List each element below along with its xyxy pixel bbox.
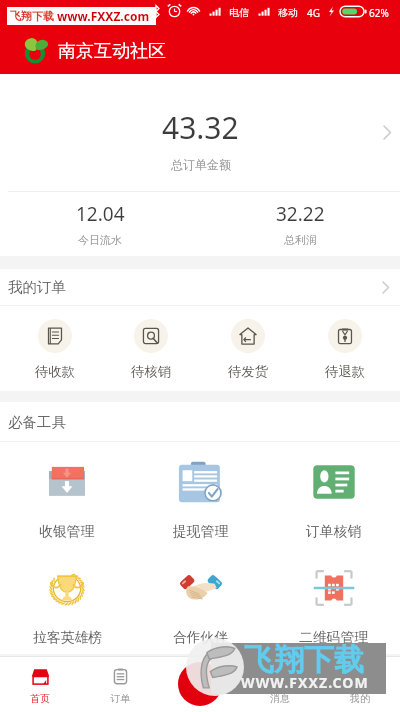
staticText: 首页 <box>30 692 50 705</box>
staticText: 提现管理 <box>173 523 229 540</box>
staticText: 合作伙伴 <box>173 629 229 646</box>
staticText: 飞翔下载 <box>244 641 364 679</box>
button[interactable]: 二维码管理 <box>267 548 400 654</box>
button[interactable]: 我的 <box>320 657 400 712</box>
staticText: 4G <box>307 6 320 20</box>
staticText: 二维码管理 <box>299 629 368 646</box>
button[interactable]: 订单核销 <box>267 442 400 548</box>
button[interactable]: 32.22 <box>200 192 400 256</box>
staticText: 32.22 <box>276 201 325 227</box>
staticText: 移动 <box>278 6 298 19</box>
button[interactable]: 收银管理 <box>0 442 134 548</box>
staticText: 待核销 <box>131 363 171 380</box>
staticText: 今日流水 <box>78 233 122 247</box>
staticText: 南京互动社区 <box>58 40 166 63</box>
button[interactable]: Scan <box>178 662 222 706</box>
staticText: 43.32 <box>162 107 239 148</box>
button[interactable]: 43.32 <box>0 74 400 191</box>
button[interactable]: 必备工具 <box>0 402 400 441</box>
staticText: 必备工具 <box>8 413 66 431</box>
staticText: 拉客英雄榜 <box>33 629 102 646</box>
staticText: 待收款 <box>35 363 75 380</box>
button[interactable]: 12.04 <box>0 192 200 256</box>
button[interactable]: 提现管理 <box>134 442 267 548</box>
staticText: 待退款 <box>325 363 365 380</box>
staticText: 收银管理 <box>39 523 95 540</box>
button[interactable]: 首页 <box>0 657 80 712</box>
button[interactable]: 待退款 <box>296 306 393 391</box>
staticText: 我的 <box>350 692 370 705</box>
staticText: 消息 <box>270 692 290 705</box>
staticText: 订单 <box>110 692 130 705</box>
button[interactable]: 合作伙伴 <box>134 548 267 654</box>
staticText: 我的订单 <box>8 278 66 296</box>
staticText: www.FXXZ.com <box>57 8 150 24</box>
staticText: 总利润 <box>284 233 317 247</box>
staticText: 62% <box>369 6 389 20</box>
staticText: 订单核销 <box>306 523 362 540</box>
staticText: 电信 <box>229 6 249 19</box>
staticText: 总订单金额 <box>171 157 231 172</box>
button[interactable]: 我的订单 <box>0 269 400 305</box>
staticText: 12.04 <box>76 201 125 227</box>
button[interactable]: 待发货 <box>199 306 296 391</box>
button[interactable]: 待收款 <box>7 306 103 391</box>
staticText: 飞翔下载 <box>10 9 54 23</box>
button[interactable]: 消息 <box>240 657 320 712</box>
staticText: WWW.FXXZ.COM <box>241 673 369 692</box>
button[interactable]: 待核销 <box>103 306 199 391</box>
button[interactable]: 拉客英雄榜 <box>0 548 134 654</box>
button[interactable]: 订单 <box>80 657 160 712</box>
staticText: 待发货 <box>228 363 268 380</box>
